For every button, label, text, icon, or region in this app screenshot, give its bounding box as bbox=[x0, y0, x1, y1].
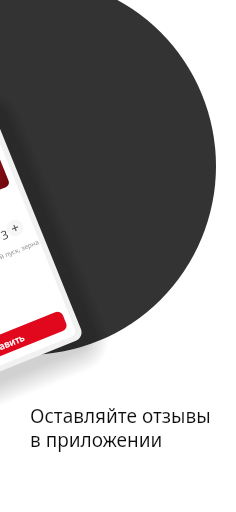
staticText: Оставляйте отзывы в приложении bbox=[30, 403, 211, 452]
